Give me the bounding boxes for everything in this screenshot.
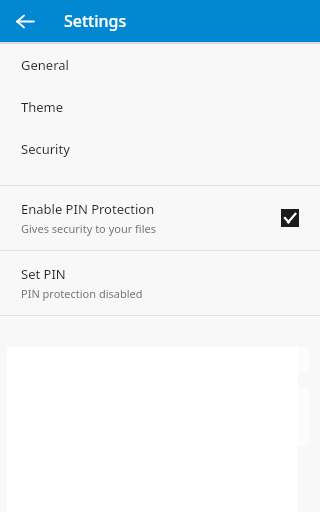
button[interactable]: Back <box>11 7 39 35</box>
button[interactable]: Enable PIN Protection <box>0 186 320 250</box>
staticText: Enable PIN Protection <box>21 200 155 218</box>
staticText: Settings <box>64 10 127 32</box>
button[interactable]: Theme <box>0 86 320 128</box>
staticText: Set PIN <box>21 265 66 283</box>
button[interactable]: Set PIN <box>0 251 320 315</box>
button[interactable]: Security <box>0 128 320 170</box>
staticText: Theme <box>21 98 64 116</box>
button[interactable]: General <box>0 44 320 86</box>
staticText: Security <box>21 140 70 158</box>
staticText: Gives security to your files <box>21 221 157 236</box>
staticText: General <box>21 56 69 74</box>
staticText: PIN protection disabled <box>21 286 143 301</box>
